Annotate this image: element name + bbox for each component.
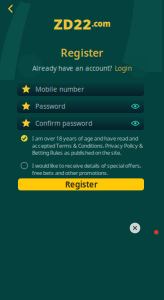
- button[interactable]: I would like to receive details of speci…: [21, 162, 143, 176]
- staticText: Password: [35, 102, 65, 111]
- staticText: Confirm password: [35, 119, 92, 128]
- button[interactable]: Login: [115, 64, 132, 72]
- button[interactable]: Close: [128, 221, 142, 235]
- button[interactable]: Back: [3, 2, 19, 16]
- staticText: I am over 18 years of age and have read …: [32, 135, 143, 156]
- staticText: Already have an account?: [32, 64, 112, 72]
- button[interactable]: Confirm password: [17, 116, 144, 130]
- staticText: Login: [115, 64, 132, 72]
- button[interactable]: Register: [18, 178, 144, 190]
- staticText: Register: [60, 45, 103, 60]
- staticText: Register: [65, 179, 97, 190]
- staticText: .com: [91, 18, 110, 29]
- button[interactable]: Mobile number: [17, 82, 144, 96]
- button[interactable]: I am over 18 years of age and have read …: [21, 135, 143, 156]
- staticText: Mobile number: [35, 85, 84, 94]
- button[interactable]: Password: [17, 99, 144, 113]
- staticText: ZD22: [53, 14, 91, 33]
- staticText: I would like to receive details of speci…: [32, 162, 141, 176]
